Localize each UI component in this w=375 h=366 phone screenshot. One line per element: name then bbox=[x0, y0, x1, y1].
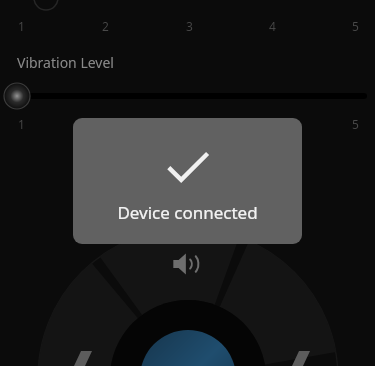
staticText: 4 bbox=[269, 18, 276, 34]
button[interactable]: 5 bbox=[352, 116, 359, 132]
button[interactable]: 4 bbox=[269, 18, 276, 34]
button[interactable]: 3 bbox=[186, 18, 193, 34]
staticText: 2 bbox=[102, 18, 109, 34]
button[interactable]: Device connected bbox=[73, 118, 302, 244]
staticText: 5 bbox=[352, 116, 359, 132]
button[interactable]: 1 bbox=[18, 18, 25, 34]
button[interactable] bbox=[0, 82, 375, 110]
button[interactable]: Volume bbox=[172, 251, 205, 277]
staticText: 1 bbox=[18, 116, 25, 132]
staticText: Vibration Level bbox=[17, 53, 114, 72]
staticText: Device connected bbox=[117, 201, 258, 224]
staticText: 5 bbox=[352, 18, 359, 34]
staticText: 1 bbox=[18, 18, 25, 34]
button[interactable]: 1 bbox=[18, 116, 25, 132]
button[interactable]: 2 bbox=[102, 18, 109, 34]
staticText: 3 bbox=[186, 18, 193, 34]
button[interactable]: 5 bbox=[352, 18, 359, 34]
